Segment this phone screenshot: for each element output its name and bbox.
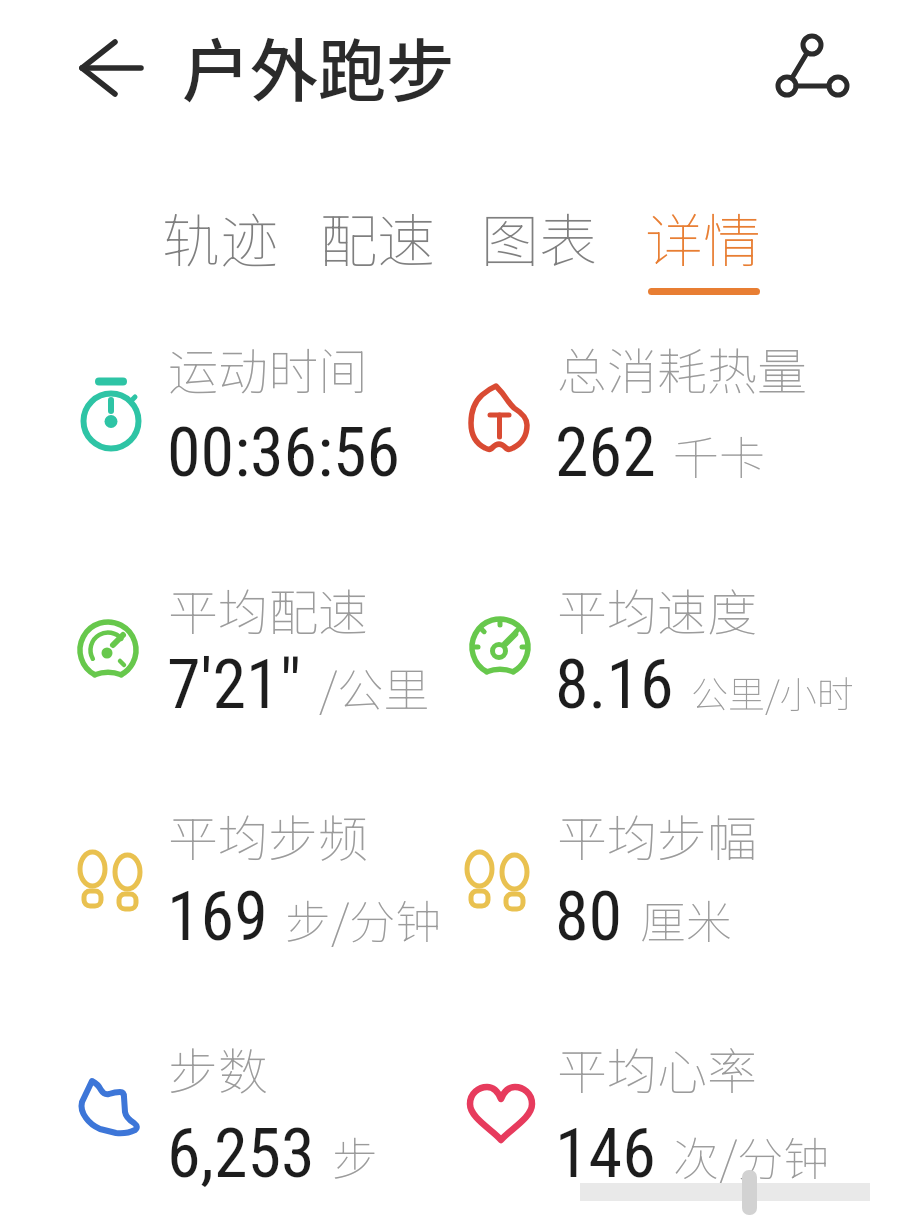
staticText: 运动时间 [168,332,368,404]
staticText: 00:36:56 [167,413,401,493]
staticText: 步 [332,1123,378,1190]
staticText: 7'21" [167,645,302,725]
staticText: /公里 [319,654,430,721]
staticText: 户外跑步 [182,17,455,115]
button[interactable]: 轨迹 [148,181,292,277]
button[interactable]: 配速 [305,181,449,277]
button[interactable] [63,26,149,110]
staticText: 平均步幅 [557,799,757,871]
staticText: 146 [555,1114,656,1194]
staticText: 配速 [319,195,436,279]
staticText: 平均心率 [557,1032,757,1104]
staticText: 图表 [481,195,598,279]
staticText: 千卡 [673,422,765,489]
staticText: 厘米 [640,886,732,953]
staticText: 平均速度 [557,573,757,645]
staticText: 平均步频 [168,799,368,871]
staticText: 80 [555,877,623,957]
staticText: 详情 [645,195,762,279]
button[interactable]: 详情 [631,181,775,277]
button[interactable]: 图表 [467,181,611,277]
staticText: 8.16 [555,645,674,725]
staticText: 平均配速 [168,573,368,645]
button[interactable] [768,20,860,106]
staticText: 公里/小时 [691,665,854,719]
staticText: 262 [555,413,656,493]
staticText: 轨迹 [162,195,279,279]
staticText: 次/分钟 [673,1123,830,1190]
staticText: 6,253 [167,1114,315,1194]
staticText: 169 [167,877,268,957]
staticText: 步数 [168,1032,268,1104]
staticText: 步/分钟 [285,886,442,953]
staticText: 总消耗热量 [557,332,807,404]
